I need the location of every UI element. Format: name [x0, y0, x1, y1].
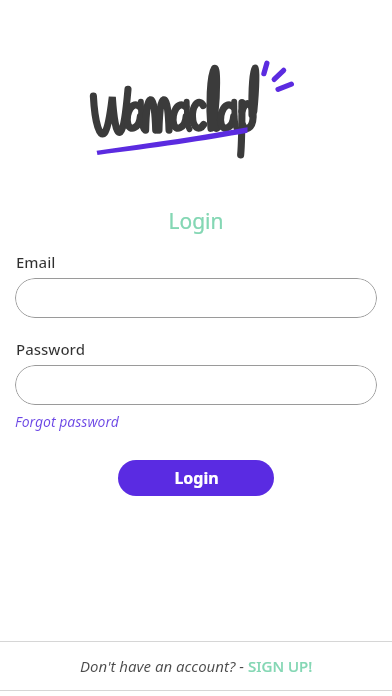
- button[interactable]: Login: [118, 460, 274, 496]
- staticText: SIGN UP!: [248, 656, 313, 676]
- button[interactable]: Password input: [15, 365, 377, 405]
- button[interactable]: Don't have an account? -: [0, 642, 392, 690]
- staticText: Don't have an account? -: [80, 656, 248, 676]
- staticText: Password: [16, 339, 85, 359]
- staticText: Email: [16, 252, 56, 272]
- staticText: Forgot password: [15, 412, 119, 431]
- staticText: Login: [168, 207, 224, 236]
- staticText: Login: [174, 467, 219, 489]
- button[interactable]: Email input: [15, 278, 377, 318]
- other: Wannaclap: [88, 58, 303, 153]
- button[interactable]: Forgot password: [15, 410, 119, 433]
